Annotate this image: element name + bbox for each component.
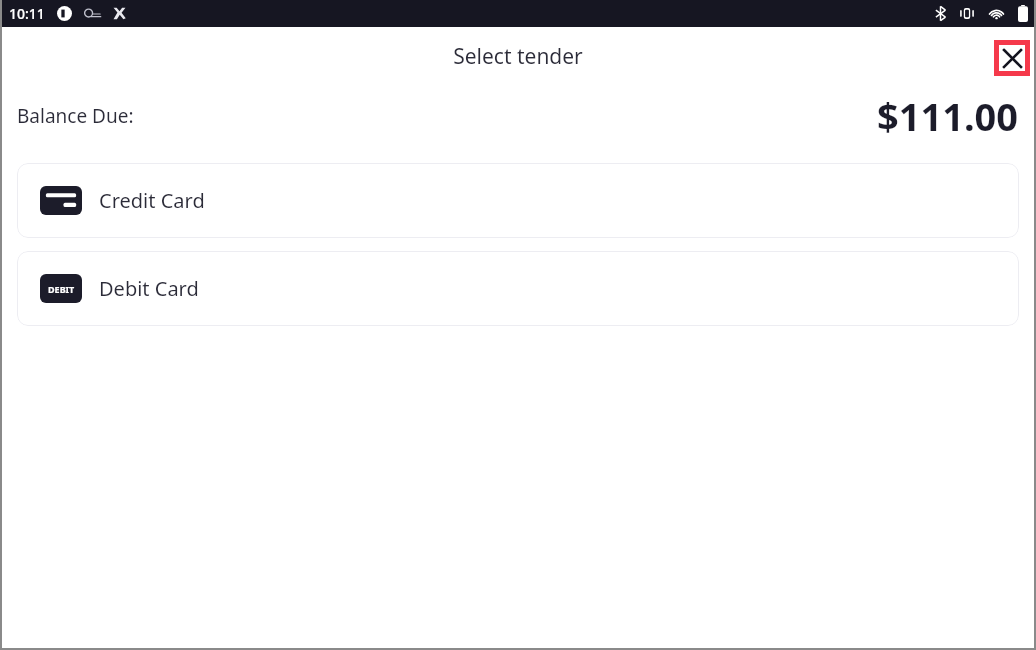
staticText: $111.00 bbox=[877, 90, 1019, 142]
button[interactable]: Credit Card bbox=[17, 163, 1019, 238]
staticText: 10:11 bbox=[9, 4, 45, 23]
button[interactable]: DEBIT bbox=[17, 251, 1019, 326]
staticText: Balance Due: bbox=[17, 103, 134, 129]
staticText: Credit Card bbox=[99, 187, 205, 214]
staticText: Select tender bbox=[453, 42, 583, 71]
button[interactable]: Close bbox=[994, 40, 1030, 76]
staticText: Debit Card bbox=[99, 275, 199, 302]
staticText: DEBIT bbox=[48, 283, 75, 295]
